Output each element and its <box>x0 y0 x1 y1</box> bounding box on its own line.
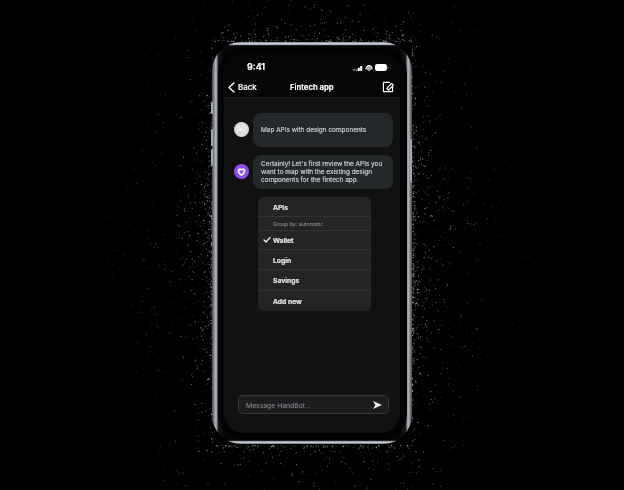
staticText: Add new <box>273 297 302 305</box>
staticText: Fintech app <box>290 83 334 92</box>
staticText: 9:41 <box>247 61 266 72</box>
button[interactable]: Wallet <box>258 231 371 249</box>
staticText: Wallet <box>273 236 294 244</box>
staticText: Group by: automatic <box>273 221 324 227</box>
staticText: Map APIs with design components <box>261 126 367 134</box>
button[interactable]: Login <box>258 250 371 269</box>
staticText: APIs <box>273 203 288 211</box>
button[interactable]: Back <box>224 78 265 96</box>
button[interactable]: Compose <box>377 77 400 97</box>
button[interactable]: APIs <box>258 197 371 216</box>
button[interactable]: Add new <box>258 291 371 311</box>
staticText: Login <box>273 256 292 264</box>
button[interactable]: Message HandBot... <box>238 395 389 414</box>
staticText: SO <box>238 126 246 133</box>
button[interactable]: Certainly! Let's first review the APIs y… <box>253 155 393 189</box>
staticText: Certainly! Let's first review the APIs y… <box>261 160 383 168</box>
staticText: want to map with the existing design <box>261 168 373 176</box>
staticText: components for the fintech app. <box>261 176 359 184</box>
staticText: Savings <box>273 276 300 284</box>
button[interactable]: Map APIs with design components <box>253 113 393 147</box>
staticText: Back <box>238 82 257 92</box>
button[interactable]: Savings <box>258 270 371 290</box>
staticText: Message HandBot... <box>246 401 373 409</box>
